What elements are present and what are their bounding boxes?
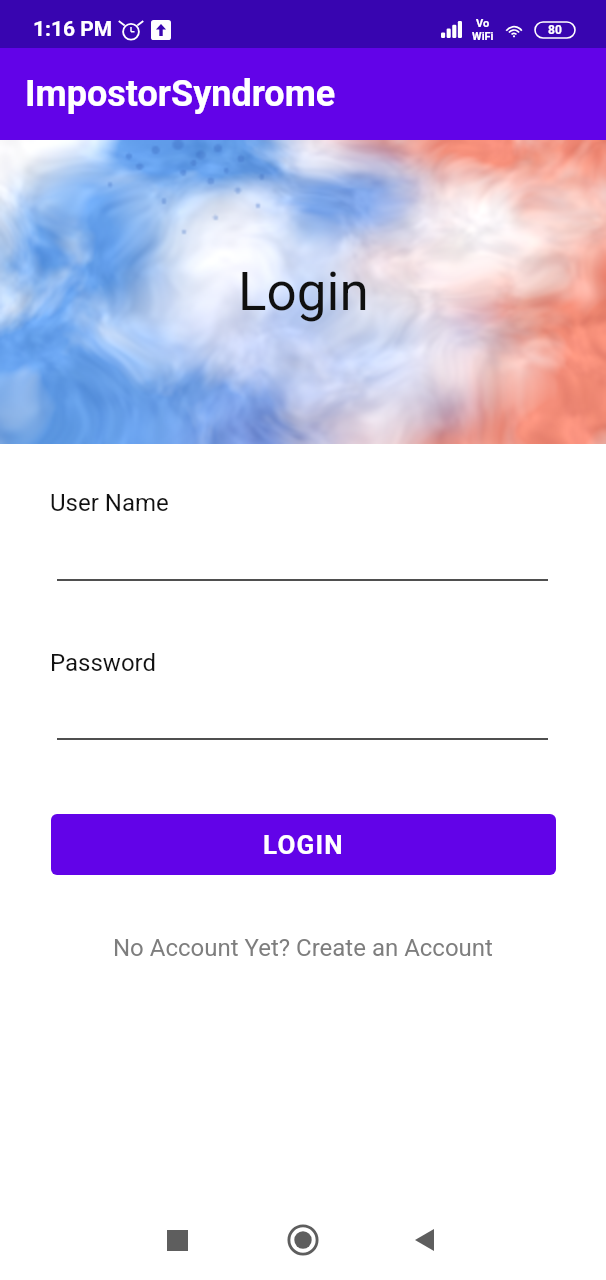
button[interactable]: Recent apps <box>145 1208 209 1272</box>
staticText: 1:16 PM <box>33 17 113 42</box>
staticText: Vo <box>476 17 490 30</box>
button[interactable]: Back <box>392 1208 456 1272</box>
staticText: WiFi <box>472 30 494 43</box>
staticText: No Account Yet? Create an Account <box>113 934 493 962</box>
staticText: User Name <box>50 489 169 517</box>
staticText: 80 <box>548 23 562 37</box>
button[interactable]: Home <box>271 1208 335 1272</box>
staticText: LOGIN <box>263 830 344 860</box>
staticText: Password <box>50 649 157 677</box>
staticText: Login <box>238 261 369 323</box>
button[interactable]: No Account Yet? Create an Account <box>0 926 606 970</box>
button[interactable]: LOGIN <box>51 814 556 875</box>
staticText: ImpostorSyndrome <box>25 73 336 115</box>
